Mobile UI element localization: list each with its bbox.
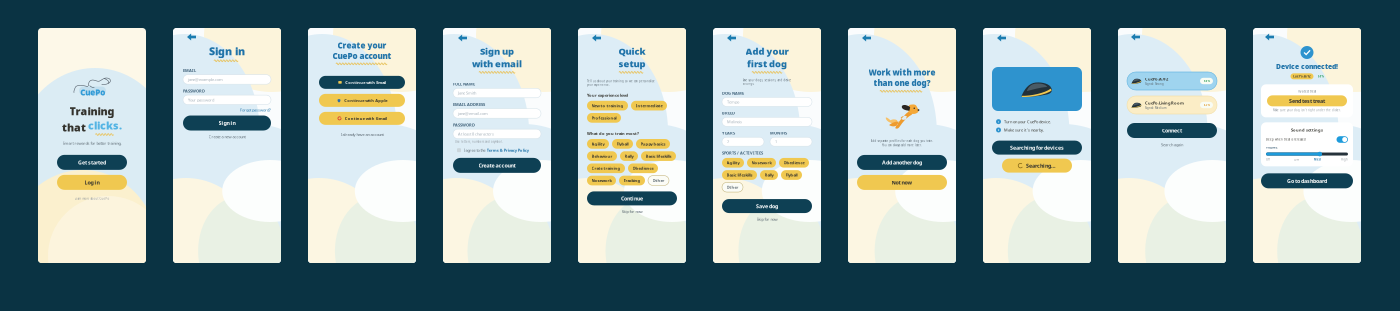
button[interactable]: Rally [620, 151, 638, 161]
staticText: Other [726, 184, 738, 190]
button[interactable]: Continue with Gmail [319, 112, 405, 125]
button[interactable]: Back [1128, 30, 1143, 44]
button[interactable]: Search again [1161, 142, 1183, 147]
staticText: your experience. [587, 83, 610, 86]
staticText: Flyball [616, 141, 628, 146]
staticText: CuePo [80, 87, 105, 98]
staticText: Save dog [756, 202, 778, 210]
button[interactable]: Back [455, 31, 470, 45]
staticText: Other [652, 178, 664, 183]
button[interactable]: Flyball [612, 139, 633, 149]
staticText: Turn on your CuePo device. [1004, 119, 1051, 124]
button[interactable]: I already have an account [340, 132, 383, 137]
button[interactable]: Rally [760, 170, 778, 180]
staticText: Try a test treat [1298, 90, 1316, 93]
button[interactable]: Basic lifeskills [722, 170, 757, 180]
button[interactable]: Create a new account [208, 134, 245, 139]
button[interactable]: Not now [857, 175, 947, 190]
staticText: Low [1294, 158, 1299, 161]
button[interactable]: Sign in [183, 115, 271, 130]
staticText: Behaviour [591, 153, 612, 159]
staticText: High [1341, 158, 1348, 161]
button[interactable]: Skip for now [756, 217, 777, 222]
button[interactable]: Tracking [619, 176, 645, 185]
button[interactable]: Behaviour [587, 151, 617, 161]
button[interactable]: Agility [722, 158, 744, 168]
button[interactable]: Obedience [628, 163, 658, 173]
staticText: Puppy basics [640, 141, 665, 146]
staticText: Not now [891, 179, 912, 186]
button[interactable]: Back [859, 31, 874, 45]
button[interactable]: At least 8 characters [453, 129, 541, 139]
button[interactable]: jane@email.com [453, 109, 541, 118]
staticText: 1 [775, 139, 777, 144]
button[interactable]: Other [722, 182, 743, 192]
staticText: Off [1266, 158, 1270, 161]
button[interactable]: Searching for devices [992, 141, 1082, 155]
button[interactable]: Continue with Apple [319, 94, 405, 107]
button[interactable]: Malinois [722, 117, 812, 126]
staticText: CuePo account [332, 51, 391, 61]
button[interactable]: Beep when treat is released [1336, 136, 1348, 143]
button[interactable]: 2 [722, 137, 764, 146]
button[interactable]: CuePo-A7F2 [1127, 72, 1217, 90]
staticText: that [62, 120, 86, 134]
staticText: Quick [618, 45, 645, 57]
button[interactable]: CuePo-LivingRoom [1127, 96, 1217, 114]
button[interactable]: Basic lifeskills [641, 151, 676, 161]
button[interactable]: Intermediate [631, 101, 667, 110]
staticText: 84% [1203, 79, 1209, 83]
staticText: with email [472, 57, 522, 70]
button[interactable]: I agree to the [457, 148, 529, 153]
staticText: At least 8 characters [458, 131, 494, 136]
button[interactable]: Tempo [722, 97, 812, 106]
button[interactable]: Flyball [781, 170, 802, 180]
staticText: Go to dashboard [1287, 177, 1327, 184]
button[interactable]: Back [1262, 30, 1277, 44]
staticText: Jane Smith [458, 90, 476, 96]
button[interactable]: Learn more about CuePo [74, 197, 109, 200]
button[interactable]: Agility [587, 139, 609, 149]
button[interactable]: New to training [587, 101, 628, 110]
staticText: Searching for devices [1010, 144, 1064, 151]
staticText: Send test treat [1289, 97, 1325, 104]
button[interactable]: Go to dashboard [1261, 173, 1353, 188]
button[interactable]: Nosework [747, 158, 776, 168]
button[interactable]: Continue with Email [319, 76, 405, 89]
button[interactable]: Professional [587, 113, 621, 123]
button[interactable]: Continue [587, 191, 677, 205]
button[interactable]: Create account [453, 158, 541, 173]
staticText: SPORTS / ACTIVITIES [722, 150, 763, 155]
button[interactable]: Connect [1127, 123, 1217, 138]
staticText: Continue with Gmail [345, 116, 387, 121]
button[interactable]: Back [724, 31, 739, 45]
button[interactable]: Crate training [587, 163, 625, 173]
button[interactable]: Volume [1266, 152, 1348, 157]
button[interactable]: 1 [770, 137, 812, 146]
staticText: EMAIL ADDRESS [453, 102, 485, 107]
staticText: Signal: Strong [1145, 82, 1164, 86]
button[interactable]: Searching… [1002, 159, 1072, 173]
button[interactable]: Obedience [779, 158, 809, 168]
staticText: 2 [727, 139, 729, 144]
staticText: Create your [337, 40, 386, 51]
button[interactable]: Forgot password? [240, 107, 271, 112]
button[interactable]: Back [994, 31, 1009, 45]
button[interactable]: Get started [57, 155, 127, 170]
button[interactable]: Back [589, 31, 604, 45]
button[interactable]: Log in [57, 175, 127, 190]
button[interactable]: Back [184, 30, 199, 44]
button[interactable]: Nosework [587, 176, 616, 185]
staticText: Tracking [623, 178, 640, 183]
button[interactable]: Jane Smith [453, 88, 541, 98]
button[interactable]: Your password [183, 95, 271, 105]
button[interactable]: Other [648, 176, 669, 185]
button[interactable]: Add another dog [857, 155, 947, 170]
button[interactable]: Save dog [722, 199, 812, 213]
button[interactable]: Skip for now [621, 209, 642, 214]
button[interactable]: Send test treat [1267, 95, 1347, 106]
staticText: jane@email.com [458, 111, 488, 116]
button[interactable]: Puppy basics [636, 139, 670, 149]
button[interactable]: jane@example.com [183, 75, 271, 84]
staticText: Create account [478, 162, 515, 169]
